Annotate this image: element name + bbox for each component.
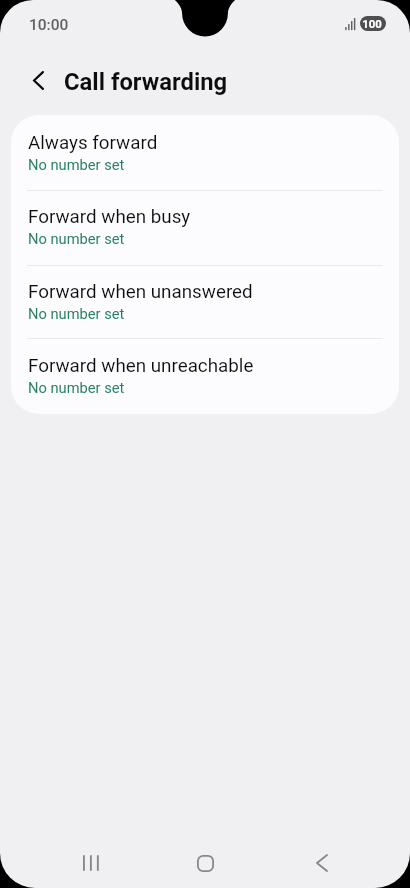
staticText: No number set bbox=[28, 379, 125, 396]
button[interactable]: Forward when unanswered bbox=[11, 264, 399, 338]
staticText: 10:00 bbox=[29, 16, 69, 34]
staticText: Forward when unreachable bbox=[28, 355, 254, 377]
staticText: Call forwarding bbox=[64, 68, 228, 96]
staticText: No number set bbox=[28, 156, 125, 173]
staticText: Always forward bbox=[28, 132, 158, 154]
staticText: Forward when unanswered bbox=[28, 281, 253, 303]
button[interactable]: Home bbox=[177, 835, 233, 888]
button[interactable]: Forward when unreachable bbox=[11, 338, 399, 414]
button[interactable]: Always forward bbox=[11, 115, 399, 189]
staticText: Forward when busy bbox=[28, 206, 191, 228]
button[interactable]: Recent apps bbox=[63, 835, 119, 888]
button[interactable]: Back bbox=[294, 835, 350, 888]
staticText: 100 bbox=[362, 17, 382, 30]
staticText: No number set bbox=[28, 230, 125, 247]
staticText: No number set bbox=[28, 305, 125, 322]
button[interactable]: Back bbox=[20, 62, 56, 98]
button[interactable]: Forward when busy bbox=[11, 189, 399, 264]
